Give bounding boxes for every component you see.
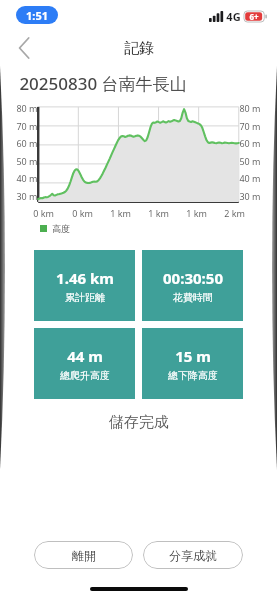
staticText: 1.46 km — [56, 268, 114, 288]
staticText: 20250830 台南牛長山 — [19, 72, 187, 95]
staticText: 50 m — [16, 155, 38, 167]
staticText: 30 m — [239, 190, 261, 202]
staticText: 40 m — [16, 172, 38, 184]
staticText: 2 km — [224, 207, 245, 219]
staticText: 0 km — [72, 207, 93, 219]
staticText: 1 km — [186, 207, 207, 219]
staticText: 30 m — [16, 190, 38, 202]
staticText: 80 m — [239, 102, 261, 114]
staticText: 離開 — [72, 548, 96, 563]
staticText: 1 km — [148, 207, 169, 219]
staticText: 70 m — [16, 120, 38, 132]
staticText: 50 m — [239, 155, 261, 167]
staticText: 15 m — [175, 346, 211, 366]
staticText: 6+ — [249, 11, 259, 22]
button[interactable]: Back — [6, 30, 42, 66]
staticText: 80 m — [16, 102, 38, 114]
staticText: 總下降高度 — [168, 369, 218, 382]
staticText: 累計距離 — [65, 291, 105, 304]
button[interactable]: 00:30:50 — [142, 250, 243, 321]
staticText: 0 km — [33, 207, 54, 219]
button[interactable]: 離開 — [34, 541, 133, 569]
staticText: 分享成就 — [169, 548, 217, 563]
staticText: 記錄 — [124, 39, 154, 58]
staticText: 44 m — [67, 346, 103, 366]
staticText: 花費時間 — [173, 291, 213, 304]
staticText: 70 m — [239, 120, 261, 132]
staticText: 00:30:50 — [163, 268, 223, 288]
staticText: 60 m — [16, 137, 38, 149]
staticText: 60 m — [239, 137, 261, 149]
staticText: 40 m — [239, 172, 261, 184]
button[interactable]: 1.46 km — [34, 250, 135, 321]
staticText: 高度 — [52, 223, 70, 234]
button[interactable]: 分享成就 — [143, 541, 243, 569]
staticText: 1:51 — [26, 8, 48, 23]
button[interactable]: 44 m — [34, 328, 135, 399]
staticText: 1 km — [110, 207, 131, 219]
staticText: 儲存完成 — [109, 413, 169, 432]
staticText: 4G — [226, 9, 241, 24]
staticText: 總爬升高度 — [60, 369, 110, 382]
button[interactable]: 15 m — [142, 328, 243, 399]
